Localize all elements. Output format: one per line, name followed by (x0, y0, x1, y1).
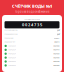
button[interactable]: Лицевой счёт (2, 40, 62, 44)
staticText: 002440 (53, 61, 59, 62)
staticText: СЧЁТЧИК ВОДЫ №1 (12, 4, 52, 9)
staticText: Расход за месяц (4, 29, 17, 31)
staticText: 002450 (53, 64, 59, 66)
staticText: ТЕКУЩИЕ ПОКАЗАНИЯ (24, 18, 40, 20)
button[interactable]: 12.04.2024 (2, 44, 62, 48)
staticText: Поверка до (4, 37, 13, 39)
staticText: 002410 (53, 49, 59, 51)
staticText: Средний расход (4, 33, 17, 35)
button[interactable]: Поверка до (2, 36, 62, 40)
staticText: 16.04.2024 (8, 61, 16, 62)
staticText: 002420 (53, 53, 59, 55)
button[interactable]: 16.04.2024 (2, 60, 62, 63)
staticText: 80 214 (54, 41, 59, 43)
button[interactable]: 13.04.2024 (2, 48, 62, 52)
staticText: 07.2027 (53, 37, 59, 39)
staticText: 13.04.2024 (8, 49, 16, 51)
button[interactable]: 17.04.2024 (2, 63, 62, 67)
staticText: 15.04.2024 (8, 57, 16, 58)
button[interactable]: Средний расход (2, 32, 62, 36)
button[interactable]: 15.04.2024 (2, 56, 62, 60)
staticText: горячее водоснабжение (15, 10, 49, 13)
staticText: 0 0 2 4 7 3 5 (22, 22, 42, 27)
staticText: 3,8 м³ (56, 33, 59, 35)
staticText: 17.04.2024 (8, 64, 16, 66)
staticText: 002400 (53, 45, 59, 47)
staticText: 002430 (53, 57, 59, 58)
button[interactable]: 14.04.2024 (2, 52, 62, 56)
staticText: 14.04.2024 (8, 53, 16, 55)
staticText: Лицевой счёт (4, 41, 15, 43)
staticText: 4,2 м³ (56, 29, 59, 31)
button[interactable]: Расход за месяц (2, 28, 62, 32)
staticText: 12.04.2024 (8, 45, 16, 47)
